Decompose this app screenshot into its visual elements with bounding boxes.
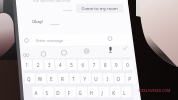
other: Chat screen [0, 0, 178, 100]
button[interactable]: Chat screen [0, 0, 178, 100]
